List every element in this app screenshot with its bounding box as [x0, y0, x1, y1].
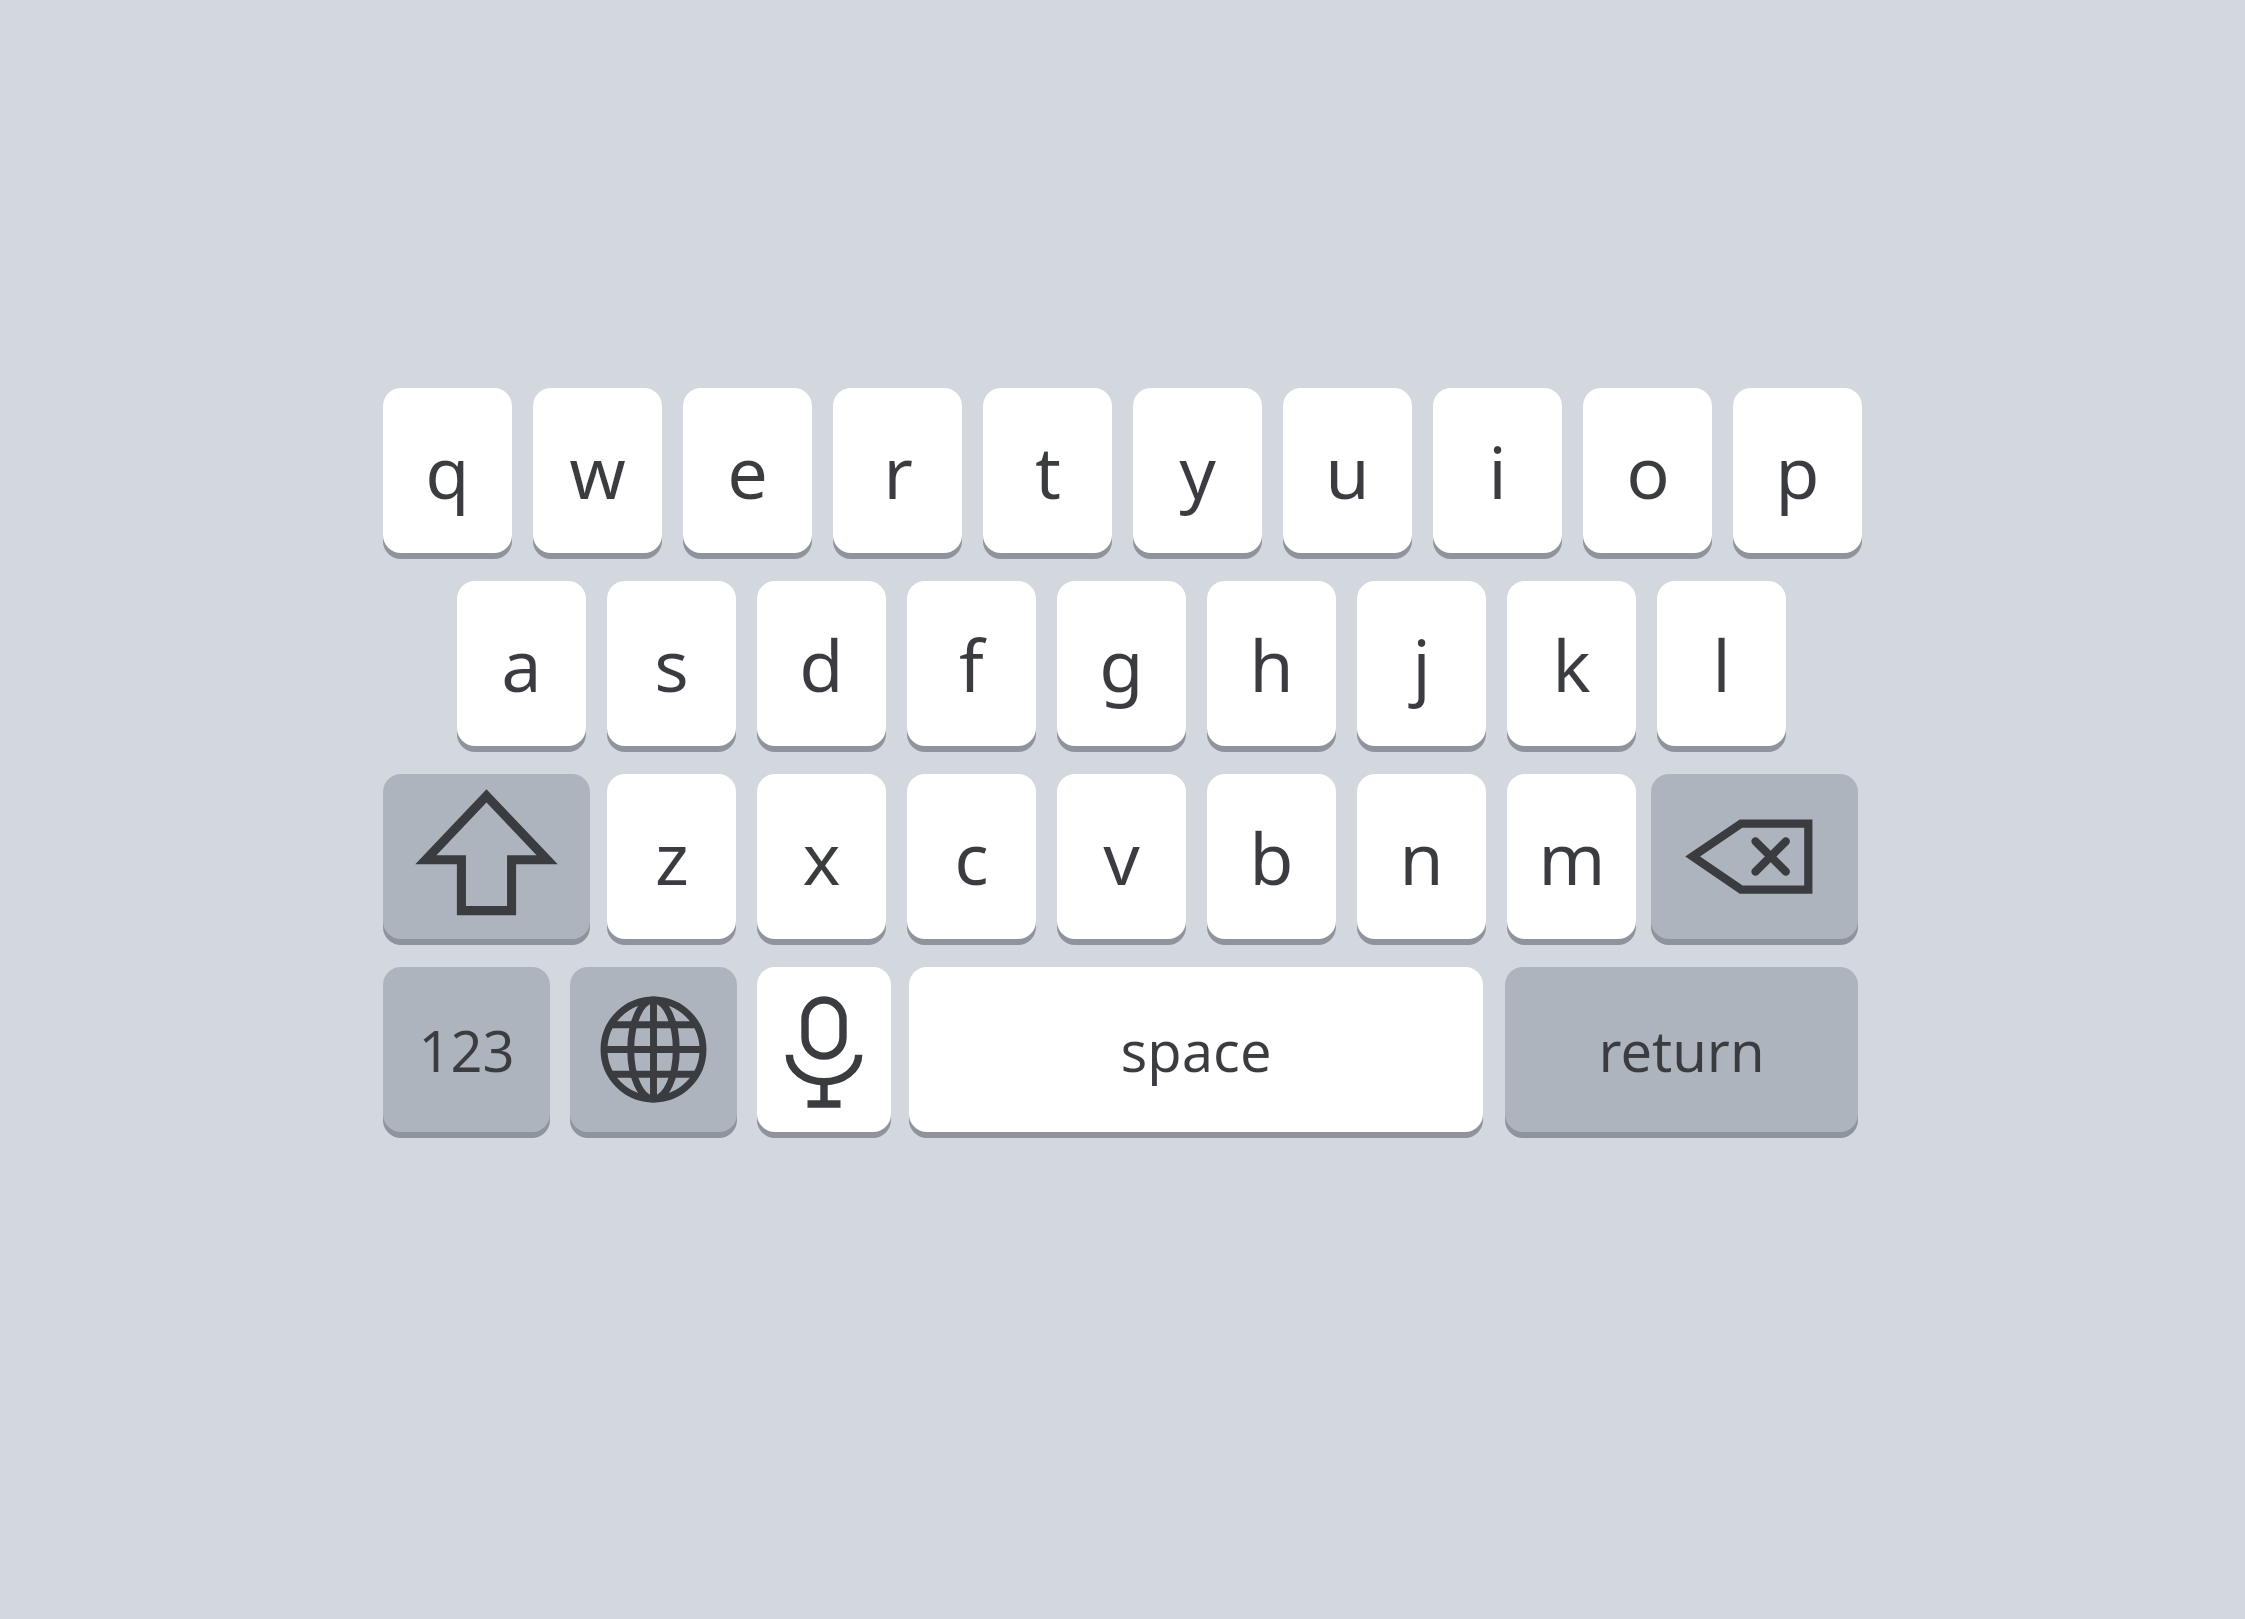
staticText: return — [1598, 1012, 1765, 1088]
button[interactable]: u — [1283, 388, 1412, 553]
button[interactable]: i — [1433, 388, 1562, 553]
button[interactable]: r — [833, 388, 962, 553]
staticText: a — [501, 615, 542, 713]
button[interactable]: n — [1357, 774, 1486, 939]
button[interactable]: o — [1583, 388, 1712, 553]
staticText: space — [1120, 1012, 1272, 1088]
staticText: z — [655, 808, 689, 906]
staticText: y — [1179, 422, 1216, 520]
staticText: 123 — [418, 1012, 515, 1088]
staticText: x — [802, 808, 841, 906]
button[interactable]: k — [1507, 581, 1636, 746]
staticText: f — [959, 615, 984, 713]
staticText: o — [1626, 422, 1670, 520]
staticText: e — [727, 422, 768, 520]
button[interactable]: v — [1057, 774, 1186, 939]
button[interactable]: return — [1505, 967, 1858, 1132]
button[interactable]: y — [1133, 388, 1262, 553]
staticText: u — [1325, 422, 1370, 520]
staticText: d — [799, 615, 844, 713]
staticText: i — [1488, 422, 1507, 520]
staticText: q — [425, 422, 470, 520]
button[interactable]: h — [1207, 581, 1336, 746]
button[interactable]: e — [683, 388, 812, 553]
button[interactable]: Backspace — [1651, 774, 1858, 939]
button[interactable]: 123 — [383, 967, 550, 1132]
button[interactable]: w — [533, 388, 662, 553]
staticText: c — [954, 808, 989, 906]
staticText: n — [1399, 808, 1444, 906]
staticText: w — [569, 422, 626, 520]
staticText: g — [1099, 615, 1144, 713]
staticText: j — [1412, 615, 1431, 713]
staticText: p — [1775, 422, 1820, 520]
staticText: s — [654, 615, 689, 713]
staticText: l — [1712, 615, 1731, 713]
button[interactable]: j — [1357, 581, 1486, 746]
button[interactable]: space — [909, 967, 1483, 1132]
button[interactable]: d — [757, 581, 886, 746]
button[interactable]: Shift — [383, 774, 590, 939]
button[interactable]: c — [907, 774, 1036, 939]
button[interactable]: b — [1207, 774, 1336, 939]
button[interactable]: l — [1657, 581, 1786, 746]
staticText: r — [883, 422, 913, 520]
button[interactable]: z — [607, 774, 736, 939]
button[interactable]: g — [1057, 581, 1186, 746]
button[interactable]: m — [1507, 774, 1636, 939]
staticText: m — [1538, 808, 1606, 906]
button[interactable]: a — [457, 581, 586, 746]
button[interactable]: Voice input — [757, 967, 891, 1132]
button[interactable]: t — [983, 388, 1112, 553]
button[interactable]: x — [757, 774, 886, 939]
staticText: v — [1103, 808, 1140, 906]
button[interactable]: Change language — [570, 967, 737, 1132]
button[interactable]: f — [907, 581, 1036, 746]
staticText: h — [1249, 615, 1294, 713]
button[interactable]: q — [383, 388, 512, 553]
staticText: b — [1249, 808, 1294, 906]
staticText: t — [1035, 422, 1061, 520]
staticText: k — [1552, 615, 1591, 713]
button[interactable]: s — [607, 581, 736, 746]
button[interactable]: p — [1733, 388, 1862, 553]
